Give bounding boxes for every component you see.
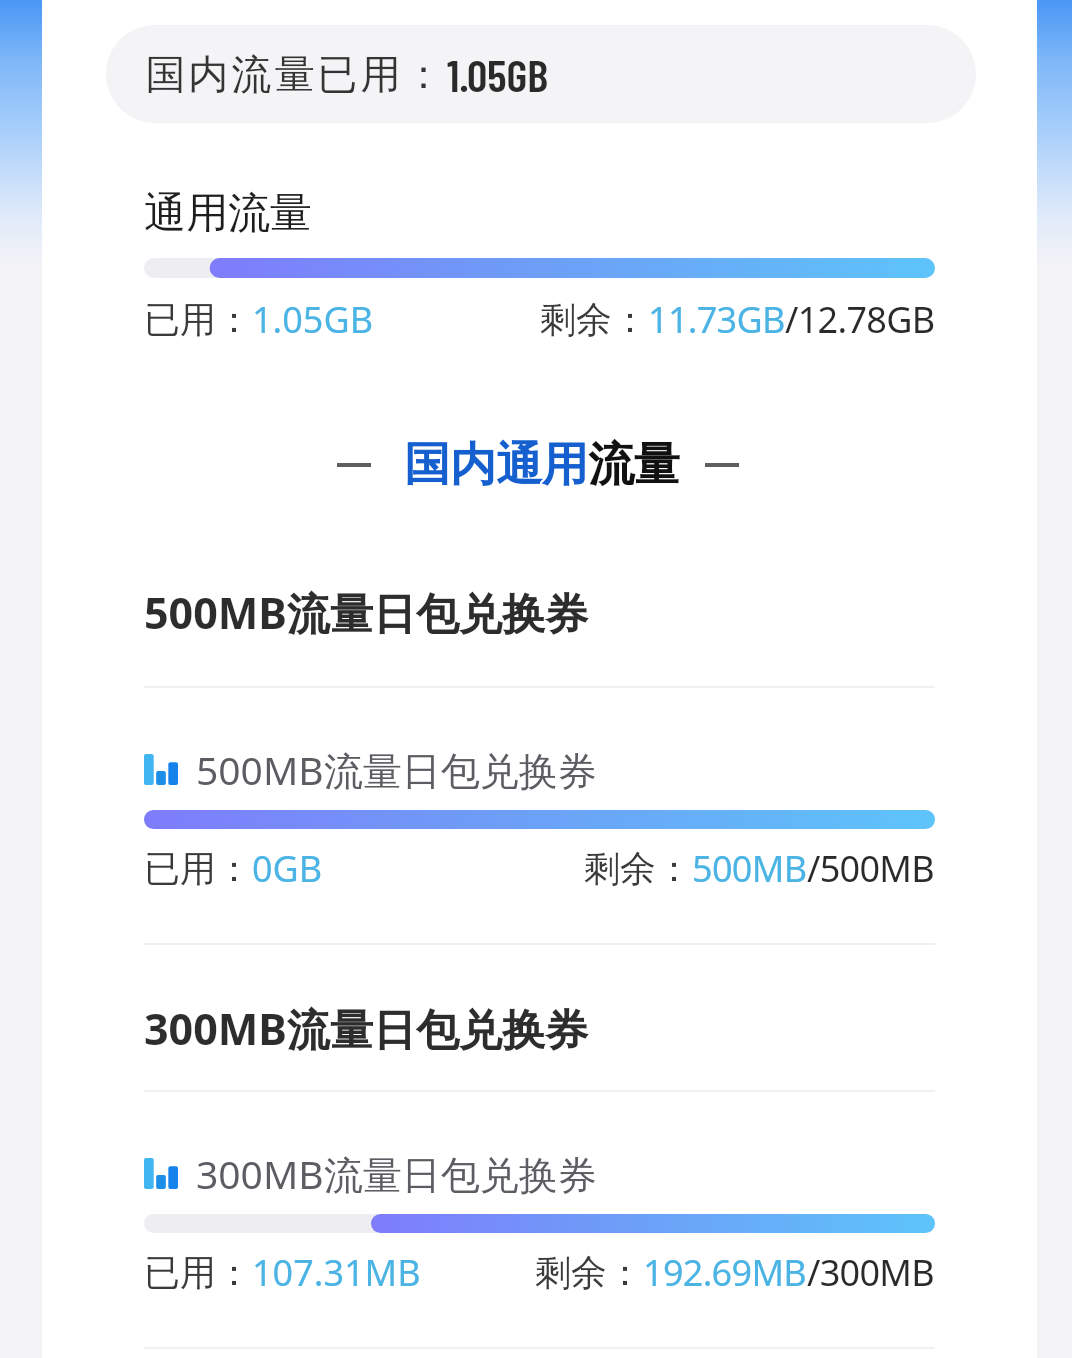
staticText: 300MB流量日包兑换券 [144,999,588,1058]
button[interactable]: 300MB流量日包兑换券 [144,999,935,1069]
button[interactable]: 通用流量 [144,187,312,240]
staticText: /500MB [807,844,935,893]
button[interactable]: Data usage chart [144,1146,935,1200]
staticText: 流量 [588,436,680,494]
staticText: 11.73GB [648,295,785,344]
button[interactable]: 已用： [144,294,935,344]
staticText: 剩余： [535,1250,643,1295]
button[interactable]: 已用： [144,1247,935,1297]
button[interactable]: Data usage chart [144,742,935,796]
button[interactable]: 500MB流量日包兑换券 [144,583,935,653]
staticText: 已用： [144,297,252,342]
staticText: 0GB [252,844,323,893]
staticText: /300MB [807,1248,935,1297]
staticText: 已用： [144,846,252,891]
staticText: 国内通用 [404,436,588,494]
staticText: 192.69MB [643,1248,807,1297]
staticText: 通用流量 [144,187,312,240]
staticText: 1.05GB [447,47,549,101]
staticText: 剩余： [584,846,692,891]
button[interactable]: 国内流量已用： [106,25,976,123]
staticText: 剩余： [540,297,648,342]
staticText: 已用： [144,1250,252,1295]
other: Data usage chart [144,754,178,785]
other: Data usage chart [144,1158,178,1189]
staticText: 300MB流量日包兑换券 [196,1147,597,1200]
staticText: 国内流量已用： [144,49,445,99]
staticText: /12.78GB [785,295,935,344]
staticText: 500MB流量日包兑换券 [196,743,597,796]
staticText: 1.05GB [252,295,374,344]
staticText: 107.31MB [252,1248,421,1297]
staticText: 500MB [692,844,807,893]
staticText: 500MB流量日包兑换券 [144,583,588,642]
button[interactable]: 已用： [144,843,935,893]
